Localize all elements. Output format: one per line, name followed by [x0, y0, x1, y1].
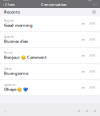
- staticText: Save: [81, 70, 86, 73]
- staticText: Good morning: [4, 23, 33, 28]
- button[interactable]: Profile: [92, 10, 96, 14]
- staticText: Share: [89, 54, 96, 57]
- staticText: Bonjour 😊 Comment: [4, 55, 47, 60]
- staticText: 9:41: [3, 0, 10, 2]
- staticText: Conversation: [41, 2, 67, 7]
- staticText: Save: [81, 86, 86, 89]
- button[interactable]: Add: [4, 108, 6, 114]
- staticText: French: [4, 51, 13, 55]
- staticText: Ohayo 😊 💙: [4, 87, 28, 92]
- staticText: Share: [89, 22, 96, 25]
- button[interactable]: ‹ Chats: [3, 2, 15, 7]
- staticText: Spanish: [4, 35, 14, 39]
- button[interactable]: Italian: [0, 64, 100, 79]
- button[interactable]: Spanish: [0, 32, 100, 47]
- button[interactable]: Japanese: [0, 80, 100, 95]
- staticText: ‹ Chats: [3, 2, 15, 7]
- staticText: Save: [81, 22, 86, 25]
- staticText: ▮▮▮ ᯤ ▰: [88, 0, 97, 1]
- staticText: Share: [89, 86, 96, 89]
- staticText: +: [4, 108, 6, 114]
- staticText: Save: [81, 38, 86, 41]
- staticText: Save: [81, 54, 86, 57]
- staticText: Italian: [4, 67, 12, 71]
- staticText: Recents: [4, 9, 20, 15]
- staticText: ⋯: [93, 2, 97, 7]
- staticText: Buongiorno: [4, 71, 28, 76]
- staticText: Japanese: [4, 83, 16, 87]
- staticText: Share: [89, 38, 96, 41]
- staticText: Share: [89, 70, 96, 73]
- button[interactable]: English: [0, 16, 100, 31]
- staticText: Buenos dias: [4, 39, 28, 44]
- button[interactable]: More: [93, 2, 97, 7]
- button[interactable]: French: [0, 48, 100, 63]
- staticText: English: [4, 19, 14, 23]
